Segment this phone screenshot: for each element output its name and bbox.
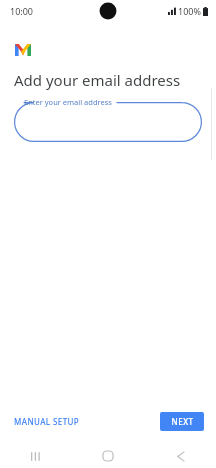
- staticText: Enter your email address: [24, 97, 112, 107]
- staticText: 100%: [178, 5, 201, 17]
- button[interactable]: Back: [144, 444, 216, 468]
- button[interactable]: Home: [72, 444, 144, 468]
- staticText: MANUAL SETUP: [14, 416, 80, 427]
- button[interactable]: MANUAL SETUP: [8, 411, 86, 432]
- button[interactable]: NEXT: [160, 412, 204, 431]
- button[interactable]: Recent apps: [0, 444, 72, 468]
- staticText: NEXT: [171, 416, 194, 427]
- button[interactable]: Enter your email address: [14, 102, 202, 142]
- staticText: 10:00: [10, 5, 34, 17]
- staticText: Add your email address: [14, 70, 181, 90]
